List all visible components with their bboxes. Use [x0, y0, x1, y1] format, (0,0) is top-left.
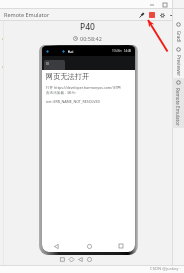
button[interactable]: Previewer	[172, 45, 184, 78]
button[interactable]: Remote Emulator	[172, 78, 184, 128]
staticText: P40	[80, 21, 95, 33]
staticText: Remote Emulator	[4, 11, 50, 18]
button[interactable]: Home	[84, 241, 94, 251]
staticText: 10h28m	[112, 49, 122, 53]
staticText: 00:58:42	[80, 35, 102, 42]
button[interactable]: Hide	[167, 10, 177, 20]
button[interactable]: Home	[86, 256, 93, 263]
button[interactable]: Settings	[157, 10, 167, 20]
button[interactable]: Recents	[116, 241, 126, 251]
staticText: Previewer	[175, 54, 181, 76]
button[interactable]: Rotate	[68, 256, 75, 263]
button[interactable]: Gradle	[172, 20, 184, 45]
staticText: 打开 https://developer.harmonyos.com/ 时网 页…	[46, 85, 121, 95]
button[interactable]: Maximize	[161, 1, 168, 8]
button[interactable]: Pin	[137, 10, 147, 20]
staticText: Remote Emulator	[175, 88, 181, 126]
button[interactable]: Back	[51, 241, 61, 251]
button[interactable]: Screenshot	[59, 256, 66, 263]
staticText: 14:45	[124, 49, 132, 53]
button[interactable]: Stop	[147, 10, 157, 20]
staticText: CSDN @juskey ·	[150, 266, 181, 272]
button[interactable]: Back	[77, 256, 84, 263]
button[interactable]: Minimize	[148, 1, 155, 8]
staticText: Gradle	[175, 29, 181, 43]
staticText: net::ERR_NAME_NOT_RESOLVED	[46, 99, 101, 104]
staticText: 网页无法打开	[46, 72, 90, 81]
